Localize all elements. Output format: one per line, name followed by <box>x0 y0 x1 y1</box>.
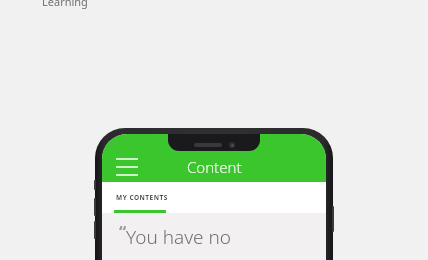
staticText: “ <box>119 221 127 243</box>
button[interactable]: Learning <box>42 0 88 9</box>
staticText: Learning <box>42 0 88 9</box>
staticText: MY CONTENTS <box>116 193 168 202</box>
staticText: Content <box>187 157 242 177</box>
staticText: You have no <box>126 224 232 250</box>
button[interactable]: MY CONTENTS <box>114 193 170 213</box>
button[interactable]: Open navigation menu <box>114 156 140 178</box>
